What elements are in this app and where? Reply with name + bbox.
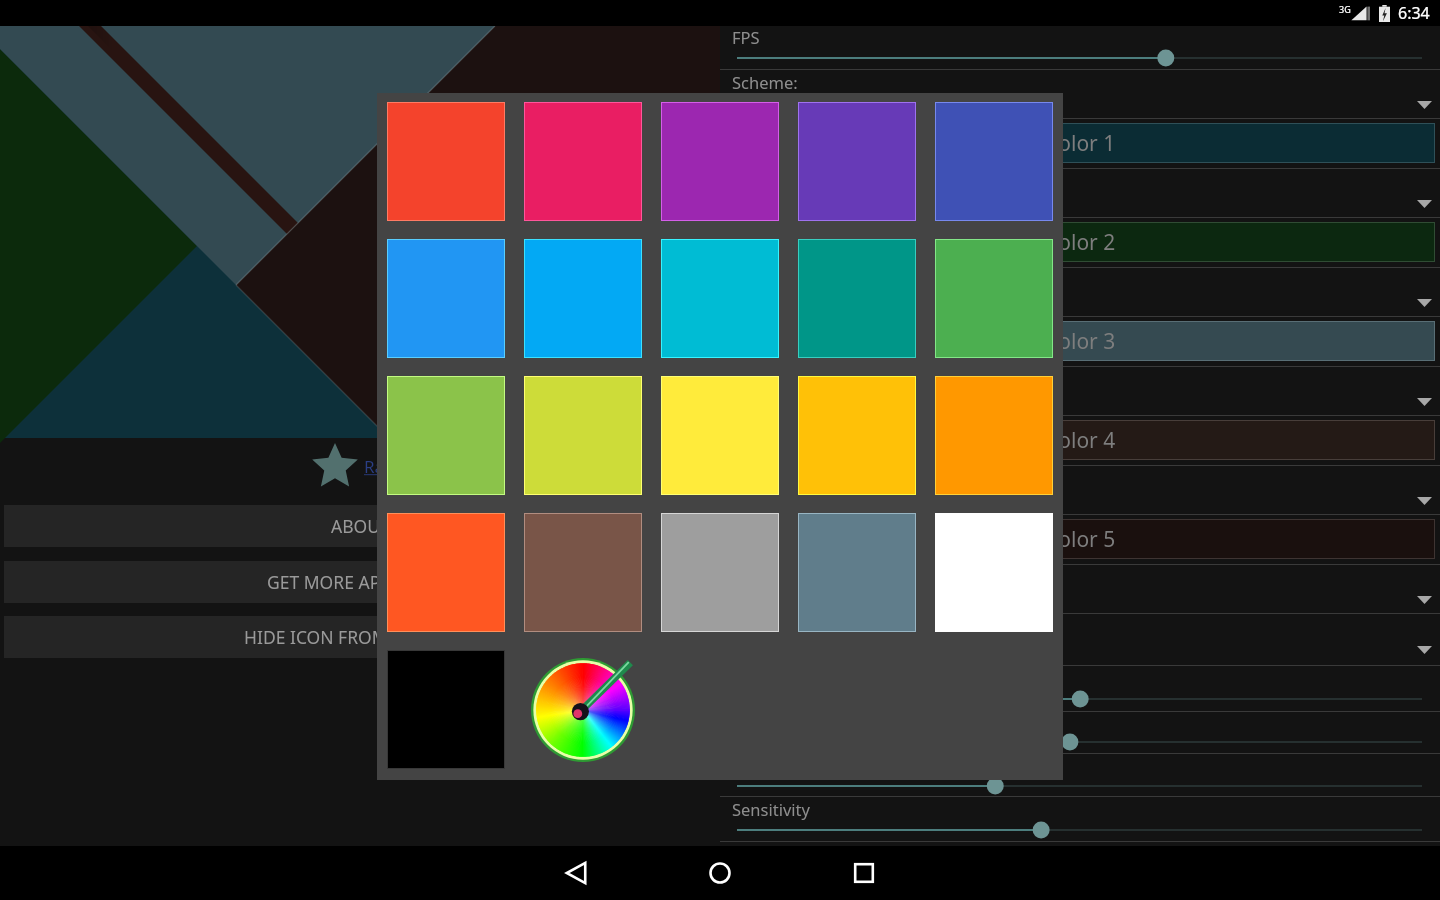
button[interactable]: Scheme: <box>720 70 1440 118</box>
button[interactable]: Select option <box>720 615 1440 663</box>
button[interactable]: Pick colour <box>524 102 642 221</box>
staticText: Color 3 <box>1045 327 1116 356</box>
button[interactable]: Recents <box>829 846 899 900</box>
button[interactable] <box>720 732 1440 754</box>
button[interactable]: Pick colour <box>661 513 779 632</box>
button[interactable]: Select option <box>720 565 1440 613</box>
button[interactable]: Pick colour <box>387 513 505 632</box>
button[interactable]: ABOUT <box>4 505 716 547</box>
button[interactable]: Color 5 <box>725 519 1435 559</box>
button[interactable]: Select option <box>720 367 1440 415</box>
button[interactable]: Pick colour <box>935 102 1053 221</box>
button[interactable]: Pick colour <box>798 239 916 358</box>
button[interactable]: Pick colour <box>661 376 779 495</box>
button[interactable]: Pick colour <box>935 239 1053 358</box>
button[interactable]: Color 2 <box>725 222 1435 262</box>
button[interactable]: Pick colour <box>387 650 505 769</box>
button[interactable]: Pick colour <box>387 102 505 221</box>
staticText: Color 1 <box>1045 129 1116 158</box>
button[interactable]: Pick colour <box>524 513 642 632</box>
staticText: Color 4 <box>1045 426 1116 455</box>
staticText: GET MORE APPS BY US <box>267 570 454 594</box>
button[interactable]: Select option <box>720 169 1440 217</box>
button[interactable]: Color 4 <box>725 420 1435 460</box>
staticText: ABOUT <box>331 514 390 538</box>
button[interactable] <box>720 776 1440 798</box>
staticText: Sensitivity <box>732 798 810 820</box>
staticText: 6:34 <box>1398 2 1430 24</box>
staticText: Scheme: <box>732 71 798 93</box>
button[interactable]: Pick colour <box>798 376 916 495</box>
button[interactable]: FPS <box>720 26 1440 69</box>
button[interactable] <box>720 689 1440 711</box>
staticText: Rate this app <box>364 455 469 478</box>
button[interactable]: Sensitivity <box>720 798 1440 846</box>
button[interactable]: Pick colour <box>387 239 505 358</box>
button[interactable]: Pick colour <box>798 102 916 221</box>
button[interactable]: Pick colour <box>524 239 642 358</box>
button[interactable]: HIDE ICON FROM 'APPS' TAB <box>4 616 716 658</box>
button[interactable]: Pick colour <box>935 376 1053 495</box>
button[interactable]: Pick colour <box>661 239 779 358</box>
button[interactable]: Back <box>541 846 611 900</box>
button[interactable]: Pick colour <box>524 376 642 495</box>
button[interactable]: Pick colour <box>798 513 916 632</box>
button[interactable]: Pick colour <box>387 376 505 495</box>
staticText: 3G <box>1339 3 1351 15</box>
button[interactable]: Select option <box>720 268 1440 316</box>
button[interactable]: Custom color <box>524 650 642 769</box>
button[interactable]: Color 3 <box>725 321 1435 361</box>
button[interactable]: Home <box>685 846 755 900</box>
button[interactable]: Rate this app <box>311 442 469 490</box>
button[interactable]: Select option <box>720 466 1440 514</box>
staticText: Color 5 <box>1045 525 1116 554</box>
staticText: Color 2 <box>1045 228 1116 257</box>
button[interactable]: Color 1 <box>725 123 1435 163</box>
button[interactable]: GET MORE APPS BY US <box>4 561 716 603</box>
staticText: HIDE ICON FROM 'APPS' TAB <box>244 625 477 649</box>
staticText: FPS <box>732 26 760 48</box>
button[interactable]: Pick colour <box>661 102 779 221</box>
